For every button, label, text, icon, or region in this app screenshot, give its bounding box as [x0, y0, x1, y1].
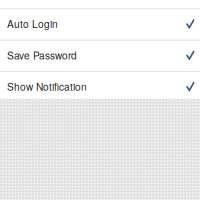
button[interactable]: Save Password: [0, 40, 200, 71]
button[interactable]: Show Notification: [0, 71, 200, 102]
staticText: Auto Login: [7, 16, 58, 31]
staticText: Show Notification: [7, 79, 87, 94]
button[interactable]: Auto Login: [0, 8, 200, 40]
staticText: Save Password: [7, 48, 77, 62]
